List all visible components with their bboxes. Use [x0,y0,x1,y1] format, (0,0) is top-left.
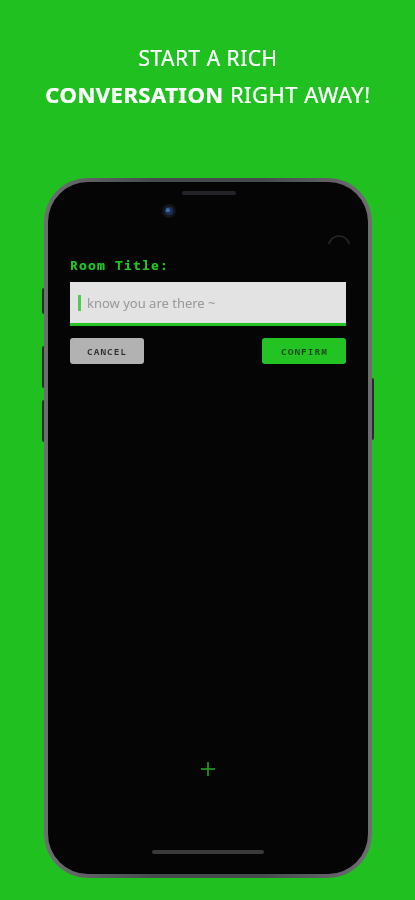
staticText: CONVERSATION RIGHT AWAY! [45,79,371,109]
staticText: CONFIRM [281,345,328,358]
staticText: know you are there ~ [87,294,216,312]
button[interactable]: Add room [195,756,221,782]
button[interactable]: CONFIRM [262,338,346,364]
staticText: Room Title: [70,256,170,274]
button[interactable]: CANCEL [70,338,144,364]
button[interactable]: know you are there ~ [70,282,346,326]
staticText: START A RICH [138,44,278,73]
staticText: CANCEL [87,345,128,358]
